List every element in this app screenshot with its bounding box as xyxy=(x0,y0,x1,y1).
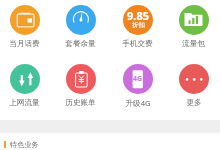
other: 上网流量 xyxy=(10,64,40,94)
other: 历史账单 xyxy=(66,64,96,94)
staticText: 历史账单 xyxy=(65,98,96,108)
staticText: 当月话费 xyxy=(9,39,40,49)
button[interactable]: 特色业务 xyxy=(0,138,220,150)
staticText: 更多 xyxy=(186,98,202,108)
other: 当月话费 xyxy=(10,5,40,35)
button[interactable]: 当月话费 xyxy=(0,5,52,49)
staticText: 4G xyxy=(133,74,143,84)
staticText: 9.85 xyxy=(127,8,149,23)
staticText: 折扣 xyxy=(132,21,145,29)
button[interactable]: 套餐余量 xyxy=(53,5,108,49)
button[interactable]: 更多 xyxy=(166,64,220,108)
button[interactable]: 上网流量 xyxy=(0,64,52,108)
button[interactable]: 流量包 xyxy=(166,5,220,49)
other: 更多 xyxy=(179,64,209,94)
other: 流量包 xyxy=(179,5,209,35)
button[interactable]: 4G xyxy=(110,64,165,108)
staticText: 特色业务 xyxy=(10,140,39,149)
staticText: 套餐余量 xyxy=(65,39,96,49)
staticText: 上网流量 xyxy=(9,98,40,108)
button[interactable]: 9.85 xyxy=(110,5,165,49)
staticText: 手机交费 xyxy=(122,39,153,49)
other: 套餐余量 xyxy=(66,5,96,35)
staticText: 流量包 xyxy=(182,39,205,49)
button[interactable]: 历史账单 xyxy=(53,64,108,108)
staticText: 升级4G xyxy=(125,98,151,108)
